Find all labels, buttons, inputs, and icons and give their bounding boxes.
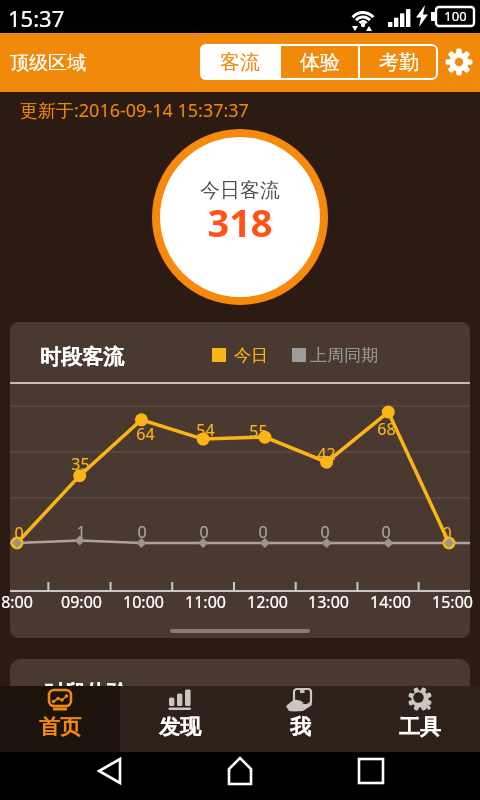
staticText: 0 (442, 522, 452, 544)
staticText: 318 (207, 196, 273, 248)
button[interactable] (360, 686, 480, 752)
staticText: 0 (14, 522, 24, 544)
staticText: 54 (196, 419, 215, 441)
staticText: 0 (381, 521, 391, 543)
button[interactable] (444, 47, 474, 77)
staticText: 0 (137, 521, 147, 543)
staticText: 100 (444, 7, 467, 25)
staticText: 上周同期 (310, 345, 378, 366)
staticText: 顶级区域 (10, 51, 86, 75)
staticText: 1 (76, 521, 86, 543)
staticText: 时段客流 (40, 344, 124, 370)
staticText: 12:00 (247, 591, 288, 613)
button[interactable] (152, 129, 328, 305)
staticText: 体验 (300, 50, 340, 75)
button[interactable]: 客流 (200, 44, 279, 80)
staticText: 考勤 (379, 50, 419, 75)
staticText: 今日 (234, 345, 268, 366)
staticText: 64 (136, 423, 155, 445)
button[interactable] (85, 752, 155, 800)
button[interactable] (120, 686, 240, 752)
staticText: 15:37 (8, 3, 65, 33)
staticText: 更新于:2016-09-14 15:37:37 (20, 98, 249, 123)
staticText: 42 (317, 443, 336, 465)
staticText: 10:00 (123, 591, 164, 613)
button[interactable] (205, 752, 275, 800)
staticText: 时段体验 (44, 680, 128, 706)
staticText: 8:00 (1, 591, 33, 613)
staticText: 11:00 (185, 591, 226, 613)
staticText: 工具 (399, 714, 441, 740)
button[interactable] (240, 686, 360, 752)
staticText: 0 (199, 521, 209, 543)
staticText: 15:00 (432, 591, 473, 613)
button[interactable] (0, 686, 120, 752)
staticText: 14:00 (370, 591, 411, 613)
staticText: 今日客流 (200, 178, 280, 203)
staticText: 13:00 (308, 591, 349, 613)
button[interactable]: 体验 (281, 44, 358, 80)
staticText: 0 (258, 521, 268, 543)
staticText: 55 (249, 420, 268, 442)
button[interactable] (336, 752, 406, 800)
staticText: 我 (290, 714, 311, 740)
staticText: 首页 (39, 714, 81, 740)
staticText: 客流 (220, 50, 260, 75)
button[interactable]: 考勤 (360, 44, 438, 80)
button[interactable] (10, 322, 470, 638)
staticText: 发现 (159, 714, 201, 740)
staticText: 35 (71, 453, 90, 475)
staticText: 68 (377, 418, 396, 440)
staticText: 09:00 (61, 591, 102, 613)
staticText: 0 (320, 521, 330, 543)
